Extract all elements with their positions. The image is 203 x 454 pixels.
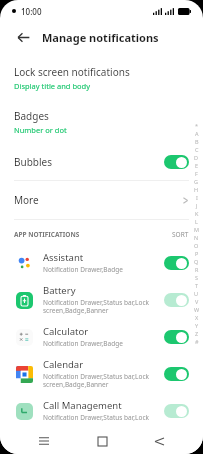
staticText: Notification Drawer,Status bar,Lock scre… [43, 298, 150, 315]
staticText: L [195, 218, 198, 225]
staticText: E [195, 162, 199, 169]
staticText: M [194, 226, 199, 233]
staticText: Lock screen notifications [14, 65, 130, 79]
staticText: Bubbles [14, 155, 52, 169]
button[interactable]: Battery [0, 279, 203, 320]
staticText: Q [194, 258, 199, 265]
button[interactable]: Lock screen notifications [0, 56, 203, 100]
staticText: Assistant [43, 251, 84, 264]
staticText: Calculator [43, 325, 89, 338]
staticText: B [195, 138, 199, 145]
staticText: Display title and body [14, 81, 90, 91]
staticText: D [194, 154, 199, 161]
button[interactable]: Assistant [0, 246, 203, 279]
staticText: Y [195, 322, 199, 329]
staticText: * [195, 122, 199, 129]
staticText: W [194, 306, 200, 313]
staticText: Badges [14, 109, 49, 123]
staticText: 10:00 [21, 6, 42, 17]
staticText: R [195, 266, 199, 273]
staticText: Number or dot [14, 125, 67, 135]
button[interactable]: More [0, 181, 203, 219]
staticText: Notification Drawer,Status bar,Lock [43, 413, 150, 422]
button[interactable]: Bubbles [0, 144, 203, 180]
staticText: K [195, 210, 199, 217]
button[interactable]: Recents [31, 428, 57, 454]
staticText: Notification Drawer,Badge [43, 265, 123, 274]
staticText: Calendar [43, 358, 84, 371]
staticText: N [194, 234, 199, 241]
staticText: Battery [43, 284, 76, 297]
staticText: Call Management [43, 399, 122, 412]
staticText: SORT [172, 230, 189, 239]
staticText: Notification Drawer,Badge [43, 339, 123, 348]
staticText: A [195, 130, 199, 137]
staticText: X [195, 314, 199, 321]
staticText: F [195, 170, 198, 177]
staticText: U [194, 290, 199, 297]
staticText: J [196, 202, 198, 209]
button[interactable]: Call Management [0, 394, 203, 427]
staticText: G [194, 178, 199, 185]
staticText: More [14, 193, 39, 207]
staticText: Notification Drawer,Status bar,Lock scre… [43, 372, 150, 389]
staticText: Manage notifications [42, 30, 159, 45]
button[interactable]: SORT [172, 230, 189, 239]
staticText: T [195, 282, 199, 289]
staticText: O [194, 242, 199, 249]
staticText: C [195, 146, 199, 153]
button[interactable]: Home [89, 428, 115, 454]
button[interactable]: Calculator [0, 320, 203, 353]
staticText: # [195, 338, 199, 345]
staticText: Z [195, 330, 199, 337]
staticText: I [196, 194, 198, 201]
staticText: P [195, 250, 199, 257]
staticText: S [195, 274, 199, 281]
staticText: V [195, 298, 199, 305]
staticText: APP NOTIFICATIONS [14, 230, 80, 239]
button[interactable]: Calendar [0, 353, 203, 394]
button[interactable]: Badges [0, 100, 203, 144]
staticText: H [194, 186, 199, 193]
button[interactable]: Back [146, 428, 172, 454]
button[interactable]: Back [12, 26, 34, 48]
